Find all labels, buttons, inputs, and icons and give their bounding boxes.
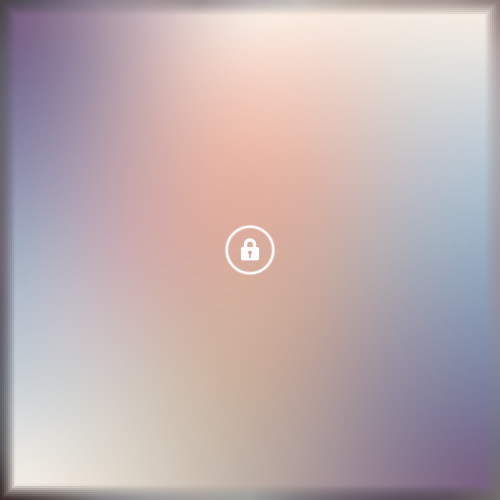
button[interactable]: Locked (227, 227, 273, 273)
